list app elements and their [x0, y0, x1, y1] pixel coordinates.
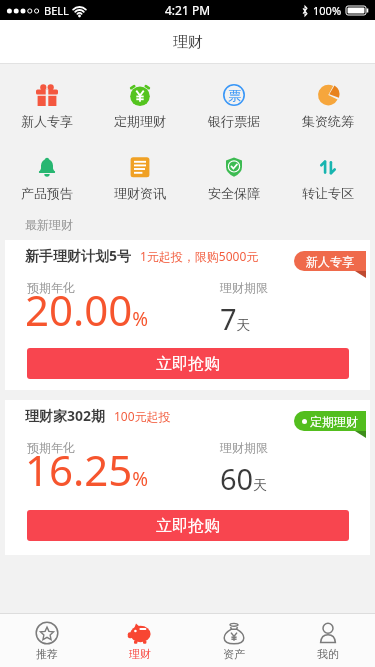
button[interactable]: 立即抢购 — [27, 348, 349, 379]
staticText: 1元起投，限购5000元 — [140, 248, 259, 264]
button[interactable]: 推荐 — [0, 614, 93, 667]
staticText: 理财家302期 — [25, 406, 106, 425]
staticText: 理财资讯 — [114, 185, 166, 201]
staticText: 预期年化 — [27, 440, 75, 455]
button[interactable]: 新手理财计划5号 — [5, 240, 370, 390]
staticText: 集资统筹 — [302, 113, 354, 129]
staticText: 预期年化 — [27, 280, 75, 295]
button[interactable]: 我的 — [281, 614, 375, 667]
button[interactable]: 安全保障 — [187, 156, 281, 201]
staticText: 推荐 — [36, 647, 58, 661]
staticText: 定期理财 — [114, 113, 166, 129]
staticText: 7天 — [220, 299, 251, 338]
button[interactable]: 定期理财 — [93, 84, 187, 129]
staticText: 4:21 PM — [165, 2, 211, 18]
staticText: 100元起投 — [114, 408, 171, 424]
button[interactable]: 理财资讯 — [93, 156, 187, 201]
button[interactable]: 理财家302期 — [5, 400, 370, 555]
staticText: 新手理财计划5号 — [25, 246, 132, 265]
button[interactable]: 资产 — [187, 614, 281, 667]
staticText: 60天 — [220, 459, 268, 498]
button[interactable]: 新人专享 — [0, 84, 93, 129]
staticText: 立即抢购 — [156, 354, 220, 374]
staticText: 理财期限 — [220, 440, 268, 455]
button[interactable]: 新人专享 — [294, 251, 366, 278]
staticText: 产品预告 — [21, 185, 73, 201]
staticText: 转让专区 — [302, 185, 354, 201]
button[interactable]: 票 — [187, 84, 281, 129]
staticText: BELL — [44, 3, 69, 18]
staticText: 资产 — [223, 647, 245, 661]
staticText: 最新理财 — [25, 217, 73, 232]
staticText: 立即抢购 — [156, 516, 220, 536]
staticText: 20.00% — [25, 281, 149, 338]
staticText: 理财 — [173, 33, 203, 52]
staticText: 票 — [228, 87, 241, 103]
button[interactable]: 立即抢购 — [27, 510, 349, 541]
staticText: 理财 — [129, 647, 151, 661]
staticText: 新人专享 — [21, 113, 73, 129]
staticText: 我的 — [317, 647, 339, 661]
button[interactable]: 转让专区 — [281, 156, 375, 201]
button[interactable]: 理财 — [93, 614, 187, 667]
button[interactable]: 集资统筹 — [281, 84, 375, 129]
button[interactable]: 产品预告 — [0, 156, 93, 201]
staticText: 安全保障 — [208, 185, 260, 201]
staticText: 银行票据 — [208, 113, 260, 129]
staticText: 新人专享 — [306, 254, 354, 269]
staticText: 100% — [313, 3, 342, 18]
staticText: 定期理财 — [310, 414, 358, 429]
staticText: 16.25% — [25, 441, 149, 498]
button[interactable]: 定期理财 — [294, 411, 366, 438]
staticText: 理财期限 — [220, 280, 268, 295]
